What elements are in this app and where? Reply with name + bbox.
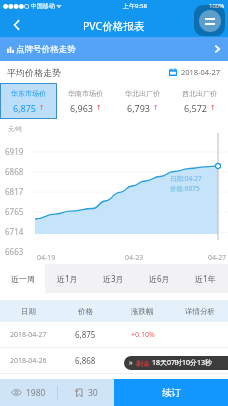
button[interactable]: 华南市场价 xyxy=(57,83,114,119)
staticText: 04-23 xyxy=(125,253,144,263)
staticText: 日期 xyxy=(21,307,36,316)
staticText: 近一周 xyxy=(11,274,35,284)
staticText: 6663 xyxy=(5,246,24,257)
staticText: 2018-04-27 xyxy=(10,330,47,340)
button[interactable]: 续订 xyxy=(114,379,228,406)
button[interactable]: 近6月 xyxy=(136,264,182,293)
staticText: 6,572 xyxy=(184,102,208,114)
staticText: 6,875 xyxy=(13,102,37,114)
staticText: ↑ xyxy=(39,104,45,112)
staticText: 6,963 xyxy=(70,102,94,114)
button[interactable]: » xyxy=(124,356,228,370)
button[interactable]: 点牌号价格走势 xyxy=(0,37,228,61)
staticText: 18天07时10分13秒 xyxy=(152,358,213,368)
button[interactable]: 1980 xyxy=(0,379,57,406)
staticText: 平均价格走势 xyxy=(7,67,61,78)
staticText: ●●●●○ 中国移动 ᯤ xyxy=(3,2,62,10)
staticText: 涨跌幅 xyxy=(131,307,154,316)
button[interactable]: 2018-04-26 xyxy=(0,348,228,373)
staticText: 近1月 xyxy=(57,273,78,284)
button[interactable]: 2018-04-27 xyxy=(0,322,228,347)
button[interactable]: 2018-04-27 xyxy=(169,67,221,77)
staticText: 近6月 xyxy=(149,273,170,284)
staticText: 华东市场价 xyxy=(11,89,46,98)
staticText: 华北出厂价 xyxy=(125,89,160,98)
button[interactable]: 近1年 xyxy=(182,264,228,293)
staticText: 近3月 xyxy=(103,273,124,284)
staticText: 近1年 xyxy=(195,273,216,284)
staticText: 2018-04-26 xyxy=(10,356,47,366)
staticText: ↑ xyxy=(210,104,216,112)
staticText: 点牌号价格走势 xyxy=(16,44,76,55)
staticText: 100% xyxy=(209,2,225,10)
button[interactable]: 华北出厂价 xyxy=(114,83,171,119)
staticText: 6,868 xyxy=(75,355,96,366)
staticText: 续订 xyxy=(162,387,181,399)
staticText: ↑ xyxy=(153,104,159,112)
button[interactable]: 近一周 xyxy=(0,264,45,293)
staticText: 1980 xyxy=(26,387,46,399)
button[interactable]: 西北出厂价 xyxy=(171,83,228,119)
staticText: PVC价格报表 xyxy=(83,19,145,33)
staticText: 价格 xyxy=(78,307,93,316)
staticText: 6714 xyxy=(5,226,24,237)
staticText: 剩余 xyxy=(136,359,150,368)
staticText: 元/吨 xyxy=(8,125,23,133)
staticText: 上午9:58 xyxy=(123,2,147,10)
staticText: 价格:6875 xyxy=(170,184,200,193)
staticText: 2018-04-27 xyxy=(181,67,221,77)
staticText: +0.10% xyxy=(131,330,155,340)
staticText: 详情分析 xyxy=(185,307,215,316)
staticText: 30 xyxy=(88,387,98,399)
button[interactable]: 30 xyxy=(58,379,114,406)
staticText: 华南市场价 xyxy=(68,89,103,98)
staticText: 6765 xyxy=(5,206,24,217)
staticText: 6817 xyxy=(5,186,24,197)
staticText: 04-19 xyxy=(37,253,56,263)
staticText: 日期:04-27 xyxy=(170,174,202,183)
button[interactable]: Back xyxy=(5,13,29,37)
staticText: 6,875 xyxy=(75,329,96,340)
staticText: 6,793 xyxy=(127,102,151,114)
button[interactable]: 近3月 xyxy=(90,264,136,293)
button[interactable]: 华东市场价 xyxy=(0,83,57,119)
staticText: 西北出厂价 xyxy=(182,89,217,98)
staticText: ↑ xyxy=(96,104,102,112)
staticText: 04-27 xyxy=(208,253,227,263)
button[interactable]: Assistive menu xyxy=(194,5,225,36)
button[interactable]: 近1月 xyxy=(45,264,90,293)
staticText: 6868 xyxy=(5,166,24,177)
staticText: » xyxy=(129,358,133,368)
staticText: 6919 xyxy=(5,146,24,157)
